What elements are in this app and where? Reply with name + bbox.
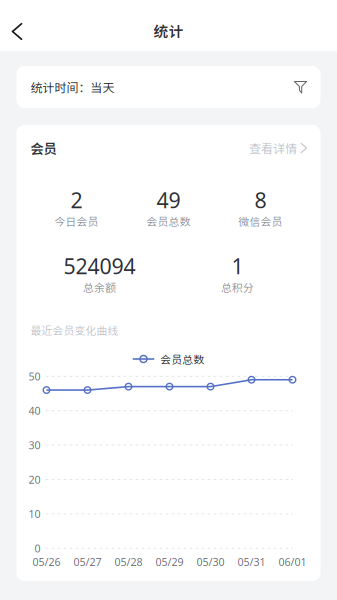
staticText: 05/31 [237,555,265,569]
staticText: 10 [28,507,40,521]
staticText: 会员 [30,138,56,158]
staticText: 05/28 [114,555,142,569]
staticText: 统计 [153,20,183,41]
button[interactable]: 查看详情 [249,137,306,159]
button[interactable]: Filter [292,79,308,95]
staticText: 2 [70,186,82,214]
staticText: 05/26 [32,555,60,569]
staticText: 最近会员变化曲线 [30,322,118,338]
staticText: 524094 [63,252,135,280]
staticText: 40 [28,404,40,418]
staticText: 05/27 [73,555,101,569]
staticText: 总积分 [221,279,254,295]
staticText: 查看详情 [249,139,297,157]
staticText: 30 [28,438,40,452]
staticText: 49 [156,186,180,214]
staticText: 会员总数 [146,213,190,229]
staticText: 8 [254,186,266,214]
staticText: 微信会员 [238,213,282,229]
staticText: 06/01 [278,555,306,569]
staticText: 50 [28,369,40,383]
button[interactable]: Back [0,9,39,53]
staticText: 总余额 [83,279,116,295]
staticText: 统计时间：当天 [30,78,114,96]
staticText: 05/29 [155,555,183,569]
staticText: 0 [34,541,40,555]
staticText: 20 [28,472,40,487]
staticText: 05/30 [196,555,224,569]
staticText: 会员总数 [160,351,204,367]
staticText: 1 [231,252,243,280]
staticText: 今日会员 [54,213,98,229]
